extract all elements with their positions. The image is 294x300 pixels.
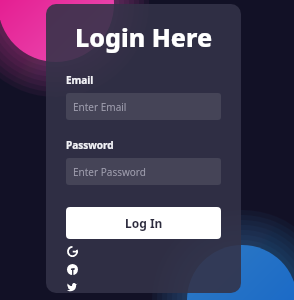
staticText: Log In (125, 215, 163, 231)
staticText: Password (66, 138, 114, 152)
button[interactable]: Log In (66, 207, 221, 239)
button[interactable]: Enter Password (66, 158, 221, 185)
button[interactable]: Enter Email (66, 93, 221, 120)
button[interactable]: Sign in with Facebook (64, 261, 80, 277)
staticText: Login Here (75, 20, 213, 54)
staticText: Enter Password (73, 165, 146, 179)
staticText: Enter Email (73, 100, 127, 114)
button[interactable]: Sign in with Twitter (64, 279, 80, 293)
staticText: Email (66, 73, 94, 87)
button[interactable]: Sign in with Google (64, 243, 80, 259)
